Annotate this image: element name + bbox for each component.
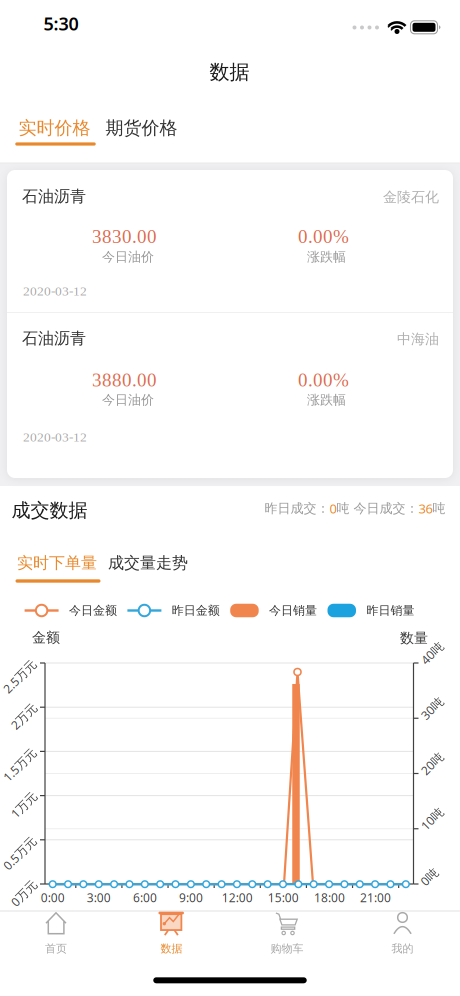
staticText: 昨日销量: [366, 603, 414, 618]
staticText: 2020-03-12: [23, 283, 87, 298]
staticText: 首页: [45, 942, 67, 955]
staticText: 涨跌幅: [307, 249, 346, 265]
staticText: 2020-03-12: [23, 429, 87, 444]
staticText: 金陵石化: [383, 188, 439, 206]
staticText: 0:00: [41, 889, 65, 905]
staticText: 0.00%: [298, 226, 349, 247]
staticText: 0吨: [420, 869, 439, 885]
staticText: 0: [329, 500, 336, 517]
button[interactable]: 石油沥青: [7, 170, 453, 312]
staticText: 30吨: [419, 700, 445, 716]
button[interactable]: 石油沥青: [7, 312, 453, 478]
staticText: 数据: [160, 942, 182, 955]
button[interactable]: 期货价格: [97, 108, 185, 148]
staticText: 吨 今日成交：: [336, 500, 418, 516]
staticText: 我的: [391, 942, 413, 955]
staticText: 数量: [400, 629, 428, 647]
button[interactable]: 成交量走势: [100, 546, 196, 580]
staticText: 2万元: [8, 708, 39, 724]
staticText: 今日油价: [102, 392, 154, 408]
button[interactable]: 我的: [355, 911, 450, 963]
staticText: 吨: [432, 500, 445, 516]
staticText: 涨跌幅: [307, 392, 346, 408]
staticText: 12:00: [222, 889, 253, 905]
staticText: 今日金额: [69, 603, 117, 618]
staticText: 10吨: [419, 811, 445, 827]
staticText: 实时价格: [18, 117, 90, 139]
staticText: 0.00%: [298, 369, 349, 390]
button[interactable]: 购物车: [239, 911, 334, 963]
staticText: 36: [418, 500, 432, 517]
staticText: 9:00: [179, 889, 203, 905]
button[interactable]: 实时下单量: [9, 546, 105, 580]
staticText: 1万元: [8, 797, 39, 813]
button[interactable]: 数据: [124, 911, 219, 963]
staticText: 3880.00: [92, 369, 157, 390]
staticText: 金额: [32, 629, 60, 646]
staticText: 今日销量: [269, 603, 317, 618]
staticText: 5:30: [43, 11, 78, 35]
staticText: 成交量走势: [108, 553, 188, 573]
staticText: 2.5万元: [0, 668, 40, 684]
staticText: 昨日成交：: [264, 500, 329, 516]
button[interactable]: 首页: [8, 911, 103, 963]
staticText: 期货价格: [105, 117, 177, 139]
staticText: 3:00: [87, 889, 111, 905]
button[interactable]: 实时价格: [10, 108, 98, 148]
staticText: 昨日金额: [172, 603, 220, 618]
staticText: 40吨: [419, 645, 445, 661]
staticText: 20吨: [419, 755, 445, 771]
staticText: 购物车: [270, 942, 303, 955]
staticText: 21:00: [360, 889, 391, 905]
staticText: 中海油: [397, 330, 439, 348]
staticText: 成交数据: [11, 499, 87, 522]
staticText: 0万元: [8, 885, 39, 901]
staticText: 6:00: [133, 889, 157, 905]
staticText: 数据: [209, 60, 249, 84]
staticText: 1.5万元: [0, 757, 40, 773]
staticText: 0.5万元: [0, 845, 40, 861]
staticText: 今日油价: [102, 249, 154, 265]
staticText: 18:00: [314, 889, 345, 905]
staticText: 3830.00: [92, 226, 157, 247]
staticText: 石油沥青: [22, 329, 86, 348]
staticText: 实时下单量: [17, 553, 97, 573]
staticText: 石油沥青: [22, 187, 86, 206]
staticText: 15:00: [268, 889, 299, 905]
